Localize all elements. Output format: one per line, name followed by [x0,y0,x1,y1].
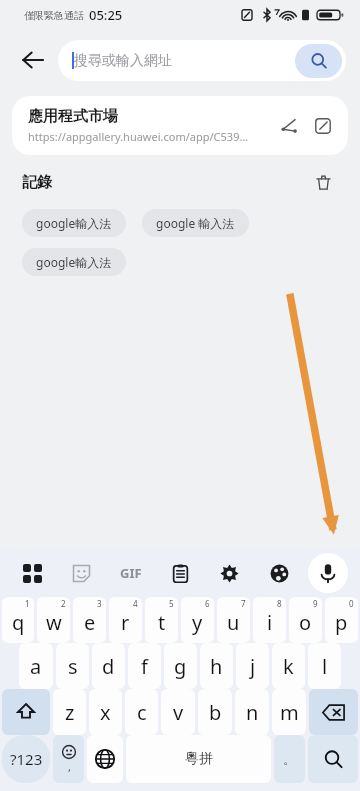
button[interactable]: GIF [111,553,151,593]
staticText: 6 [205,598,210,609]
staticText: a [30,653,42,680]
button[interactable]: a [19,643,53,689]
staticText: 8 [277,598,282,609]
staticText: 應用程式市場 [28,107,118,126]
button[interactable]: Settings [209,553,249,593]
button[interactable]: j [236,643,269,689]
button[interactable]: google 輸入法 [142,209,249,237]
staticText: 3 [97,598,102,609]
staticText: google輸入法 [36,254,112,270]
button[interactable]: 4 [109,597,142,643]
button[interactable]: Keyboard apps [12,553,52,593]
staticText: f [141,653,148,680]
staticText: 2 [61,598,66,609]
button[interactable]: Voice input [308,553,348,593]
staticText: p [335,609,348,636]
staticText: h [210,653,223,680]
button[interactable]: 8 [253,597,286,643]
button[interactable]: m [272,689,306,735]
button[interactable]: google輸入法 [22,209,126,237]
staticText: k [283,653,294,680]
staticText: ?123 [10,749,43,769]
staticText: l [322,653,328,680]
button[interactable]: 7 [217,597,250,643]
staticText: 9 [313,598,318,609]
staticText: 0 [349,598,354,609]
staticText: x [100,699,111,726]
button[interactable]: 粵拼 [126,735,271,783]
button[interactable]: Clear history [308,167,338,197]
staticText: 1 [25,598,30,609]
button[interactable]: 1 [2,597,34,643]
staticText: e [84,609,96,636]
button[interactable]: s [56,643,89,689]
button[interactable]: Search [308,735,358,783]
staticText: n [246,699,259,726]
button[interactable]: 9 [289,597,322,643]
button[interactable]: d [92,643,125,689]
button[interactable]: Open in new window [306,109,340,143]
button[interactable]: Stickers [61,553,101,593]
button[interactable]: Search [295,44,342,78]
staticText: v [173,699,184,726]
staticText: 7 [241,598,246,609]
button[interactable]: h [200,643,233,689]
button[interactable]: Theme [259,553,299,593]
staticText: 05:25 [89,6,123,24]
staticText: , [68,759,71,774]
button[interactable]: Change language [87,735,123,783]
button[interactable]: Backspace [309,689,358,735]
button[interactable]: Period [274,735,305,783]
staticText: 5 [169,598,174,609]
staticText: 記錄 [22,173,52,192]
button[interactable]: l [308,643,341,689]
button[interactable]: g [164,643,197,689]
staticText: g [174,653,187,680]
staticText: 搜尋或輸入網址 [74,52,172,70]
button[interactable]: 5 [145,597,178,643]
staticText: j [250,653,256,680]
staticText: https://appgallery.huawei.com/app/C539… [28,129,249,144]
button[interactable]: Back [10,37,56,83]
staticText: s [68,653,78,680]
button[interactable]: 搜尋或輸入網址 [58,40,346,81]
button[interactable]: b [198,689,232,735]
button[interactable]: f [128,643,161,689]
button[interactable]: Clipboard [160,553,200,593]
button[interactable]: 0 [325,597,358,643]
staticText: z [65,699,75,726]
staticText: u [227,609,240,636]
staticText: c [137,699,147,726]
staticText: 4 [133,598,138,609]
staticText: y [192,609,203,636]
staticText: r [121,609,130,636]
staticText: google 輸入法 [156,215,235,231]
button[interactable]: z [53,689,86,735]
button[interactable]: ?123 [2,735,50,783]
staticText: b [209,699,222,726]
button[interactable]: Share [272,109,306,143]
staticText: GIF [120,564,142,582]
button[interactable]: Emoji and comma [53,735,84,783]
button[interactable]: 3 [73,597,106,643]
button[interactable]: Shift [2,689,50,735]
staticText: 僅限緊急通話 [24,9,84,22]
button[interactable]: k [272,643,305,689]
staticText: q [12,609,25,636]
staticText: m [280,699,299,726]
button[interactable]: n [235,689,269,735]
button[interactable]: x [89,689,122,735]
staticText: google輸入法 [36,215,112,231]
staticText: d [102,653,115,680]
staticText: t [158,609,166,636]
button[interactable]: 6 [181,597,214,643]
staticText: w [46,609,62,636]
staticText: o [299,609,312,636]
button[interactable]: 應用程式市場 [12,96,348,155]
button[interactable]: v [161,689,195,735]
staticText: 。 [283,751,296,767]
button[interactable]: 2 [37,597,70,643]
button[interactable]: google輸入法 [22,248,126,276]
button[interactable]: c [125,689,158,735]
staticText: i [267,609,273,636]
